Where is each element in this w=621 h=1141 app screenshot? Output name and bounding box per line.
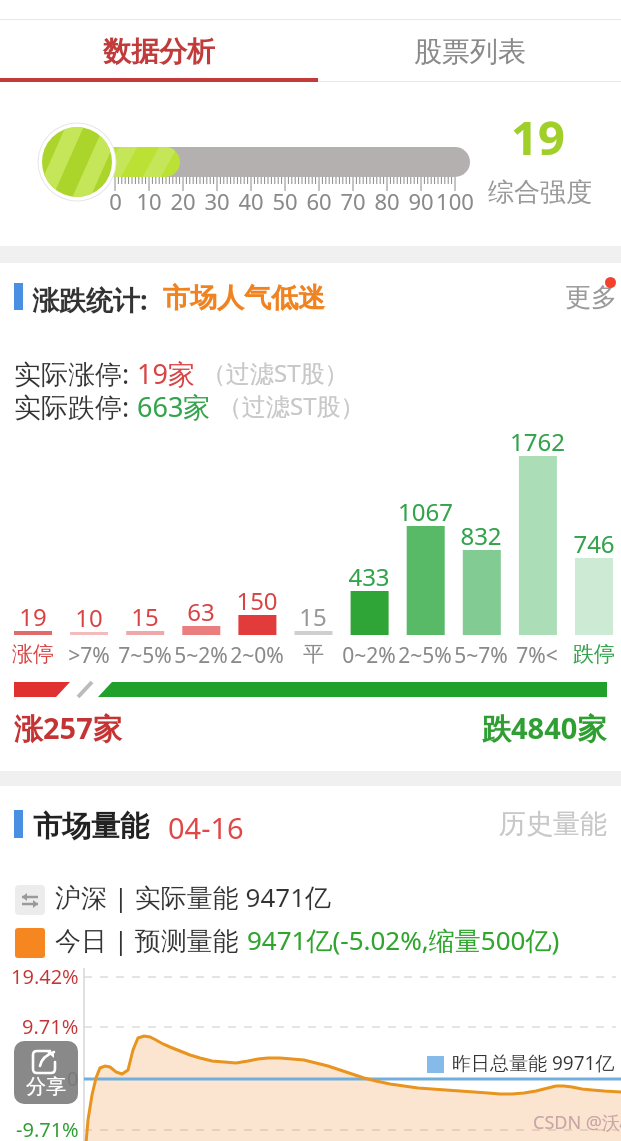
staticText: 沪深 | 实际量能 9471亿 — [55, 879, 332, 915]
staticText: 433 — [348, 560, 390, 593]
staticText: 实际跌停: — [14, 388, 130, 425]
staticText: 832 — [460, 519, 502, 552]
staticText: 跌停 — [573, 641, 615, 667]
staticText: 综合强度 — [488, 176, 592, 209]
staticText: 20 — [170, 186, 196, 216]
staticText: 昨日总量能 9971亿 — [452, 1050, 615, 1076]
staticText: 5~7% — [454, 641, 508, 670]
staticText: 分享 — [26, 1074, 66, 1099]
staticText: 746 — [573, 527, 615, 560]
button[interactable]: 股票列表 — [318, 20, 621, 82]
staticText: 9.71% — [22, 1013, 79, 1040]
staticText: （过滤ST股） — [218, 389, 365, 422]
staticText: 1067 — [398, 495, 453, 528]
button[interactable]: 分享 — [14, 1041, 78, 1104]
staticText: 涨停 — [12, 641, 54, 667]
staticText: 0~2% — [342, 641, 396, 670]
staticText: 今日 | 预测量能 — [55, 922, 239, 958]
staticText: 60 — [306, 186, 332, 216]
staticText: 663家 — [137, 388, 211, 425]
staticText: 0 — [109, 186, 122, 216]
staticText: 5~2% — [174, 641, 228, 670]
staticText: 10 — [136, 186, 162, 216]
staticText: 涨257家 — [14, 708, 122, 748]
staticText: 9471亿(-5.02%,缩量500亿) — [247, 922, 560, 958]
staticText: 150 — [236, 584, 278, 617]
staticText: 15 — [299, 600, 327, 633]
staticText: >7% — [68, 641, 110, 670]
staticText: 实际涨停: — [14, 355, 130, 392]
staticText: 2~5% — [398, 641, 452, 670]
staticText: 90 — [408, 186, 434, 216]
staticText: 1762 — [510, 425, 565, 458]
staticText: 40 — [238, 186, 264, 216]
staticText: 平 — [303, 641, 324, 667]
staticText: 市场人气低迷 — [163, 281, 325, 315]
staticText: -9.71% — [16, 1116, 79, 1141]
staticText: 19 — [511, 105, 565, 169]
staticText: 19 — [19, 600, 47, 633]
staticText: 更多 — [565, 281, 617, 314]
staticText: CSDN @沃心 — [533, 1110, 621, 1135]
staticText: 19.42% — [11, 963, 79, 990]
staticText: 数据分析 — [103, 34, 215, 69]
button[interactable]: 数据分析 — [0, 20, 318, 82]
staticText: 历史量能 — [499, 807, 607, 841]
staticText: 10 — [75, 601, 103, 634]
staticText: （过滤ST股） — [202, 356, 349, 389]
staticText: 80 — [374, 186, 400, 216]
staticText: 50 — [272, 186, 298, 216]
staticText: 100 — [436, 186, 474, 216]
staticText: 跌4840家 — [482, 708, 607, 748]
staticText: 市场量能 — [33, 808, 149, 845]
staticText: 7%< — [516, 641, 558, 670]
staticText: 0 — [67, 1065, 79, 1092]
staticText: 2~0% — [230, 641, 284, 670]
staticText: 19家 — [137, 355, 195, 392]
staticText: 涨跌统计: — [32, 281, 148, 318]
button[interactable]: 历史量能 — [400, 802, 621, 846]
button[interactable]: 更多 — [520, 275, 620, 315]
staticText: 股票列表 — [414, 34, 526, 69]
staticText: 15 — [131, 600, 159, 633]
staticText: 70 — [340, 186, 366, 216]
staticText: 63 — [187, 595, 215, 628]
staticText: 7~5% — [118, 641, 172, 670]
staticText: 30 — [204, 186, 230, 216]
staticText: 04-16 — [168, 808, 244, 847]
